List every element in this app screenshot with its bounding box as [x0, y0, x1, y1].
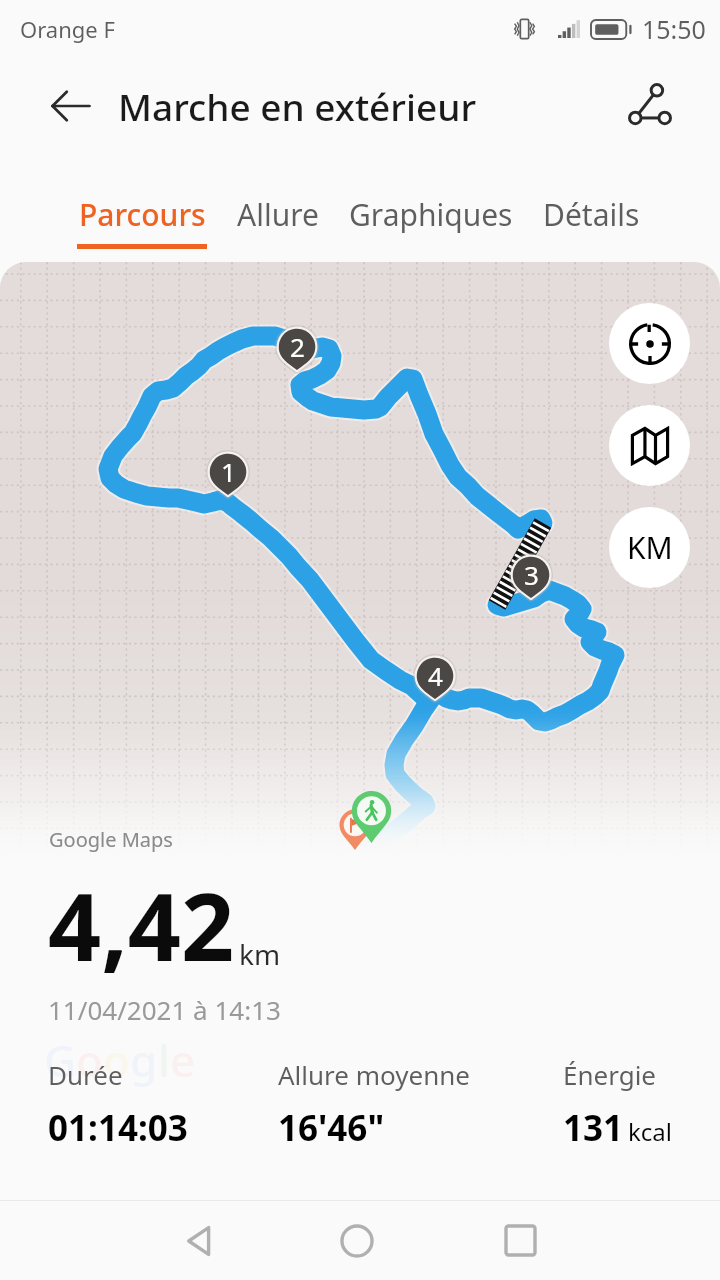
- staticText: 3: [524, 557, 539, 591]
- button[interactable]: Allure: [222, 194, 334, 249]
- button[interactable]: Units: [609, 507, 690, 588]
- staticText: 16'46": [278, 1104, 385, 1152]
- staticText: Parcours: [79, 194, 206, 235]
- staticText: Allure: [237, 194, 319, 235]
- staticText: o: [103, 1030, 130, 1090]
- button[interactable]: Home: [317, 1201, 397, 1280]
- staticText: Marche en extérieur: [118, 81, 477, 131]
- staticText: Google Maps: [49, 826, 173, 853]
- staticText: 1: [221, 454, 236, 488]
- button[interactable]: Recents: [480, 1201, 560, 1280]
- button[interactable]: Parcours: [62, 194, 222, 249]
- staticText: o: [76, 1030, 103, 1090]
- staticText: G: [44, 1030, 76, 1090]
- button[interactable]: Back: [159, 1201, 239, 1280]
- button[interactable]: Graphiques: [334, 194, 528, 249]
- button[interactable]: Locate: [609, 303, 690, 384]
- staticText: 11/04/2021 à 14:13: [48, 992, 281, 1027]
- button[interactable]: Share: [618, 74, 682, 138]
- staticText: 4,42: [48, 862, 235, 989]
- staticText: KM: [627, 527, 673, 568]
- staticText: g: [130, 1030, 158, 1090]
- staticText: km: [239, 935, 281, 973]
- staticText: Graphiques: [349, 194, 513, 235]
- staticText: 01:14:03: [48, 1104, 188, 1152]
- staticText: 4: [428, 658, 443, 692]
- staticText: Énergie: [563, 1057, 657, 1092]
- staticText: kcal: [628, 1115, 672, 1148]
- staticText: 15:50: [642, 12, 706, 46]
- button[interactable]: Détails: [528, 194, 655, 249]
- staticText: Durée: [48, 1057, 123, 1092]
- staticText: l: [158, 1030, 170, 1090]
- staticText: Orange F: [20, 14, 115, 44]
- staticText: Allure moyenne: [278, 1057, 470, 1092]
- button[interactable]: Back: [39, 74, 103, 138]
- button[interactable]: Map type: [609, 405, 690, 486]
- staticText: e: [170, 1030, 196, 1090]
- staticText: 131: [563, 1104, 624, 1152]
- staticText: Détails: [543, 194, 640, 235]
- staticText: 2: [290, 329, 305, 363]
